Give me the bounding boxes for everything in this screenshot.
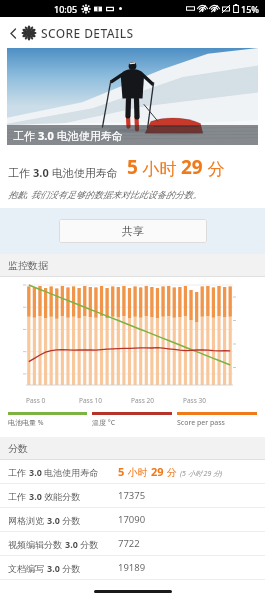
staticText: 29	[181, 154, 203, 180]
staticText: 3.0	[65, 538, 78, 550]
button[interactable]: 视频编辑分数	[0, 532, 265, 556]
staticText: 3.0	[47, 514, 60, 526]
staticText: 分	[164, 465, 177, 479]
staticText: Pass 0	[26, 396, 46, 405]
button[interactable]: Home	[94, 590, 172, 593]
staticText: 15%	[241, 3, 259, 15]
staticText: 分数	[78, 538, 99, 550]
staticText: 工作	[8, 490, 29, 502]
staticText: Pass 30	[183, 396, 206, 405]
staticText: 效能分数	[42, 490, 81, 502]
staticText: (5 小时 29 分)	[180, 469, 223, 479]
button[interactable]: 文档编写	[0, 556, 265, 580]
staticText: 19189	[118, 561, 146, 574]
staticText: 5	[118, 464, 125, 479]
staticText: 抱歉, 我们没有足够的数据来对比此设备的分数。	[8, 188, 202, 200]
staticText: 3.0	[38, 128, 54, 143]
staticText: 小时	[125, 465, 151, 479]
button[interactable]: 共享	[59, 219, 207, 243]
staticText: 工作	[8, 165, 33, 180]
staticText: 5	[127, 154, 138, 180]
staticText: 3.0	[47, 562, 60, 574]
button[interactable]: Back	[4, 24, 22, 42]
staticText: 网格浏览	[8, 514, 47, 526]
staticText: 分数	[60, 514, 81, 526]
staticText: Pass 20	[131, 396, 154, 405]
staticText: 3.0	[29, 490, 42, 502]
staticText: 电池使用寿命	[54, 128, 123, 143]
staticText: 电池使用寿命	[49, 165, 118, 180]
staticText: 工作	[8, 466, 29, 478]
staticText: Score per pass	[177, 418, 225, 428]
staticText: 3.0	[29, 466, 42, 478]
staticText: 监控数据	[8, 259, 48, 272]
staticText: 分	[203, 157, 225, 180]
staticText: 7722	[118, 537, 140, 550]
staticText: 共享	[122, 224, 144, 238]
staticText: 文档编写	[8, 562, 47, 574]
staticText: 电池电量 %	[8, 418, 44, 428]
staticText: 电池使用寿命	[42, 466, 99, 478]
button[interactable]: 工作	[0, 484, 265, 508]
staticText: 工作	[13, 128, 38, 143]
staticText: 29	[151, 464, 164, 479]
staticText: 3.0	[33, 165, 49, 180]
staticText: Pass 10	[79, 396, 102, 405]
button[interactable]: 工作	[0, 460, 265, 484]
staticText: 分数	[8, 442, 28, 455]
staticText: 视频编辑分数	[8, 538, 65, 550]
staticText: 温度 °C	[92, 418, 116, 428]
staticText: 17090	[118, 513, 146, 526]
staticText: 分数	[60, 562, 81, 574]
staticText: 10:05	[54, 3, 78, 15]
staticText: 小时	[138, 157, 181, 180]
staticText: 17375	[118, 489, 146, 502]
staticText: SCORE DETAILS	[41, 25, 134, 41]
button[interactable]: 网格浏览	[0, 508, 265, 532]
